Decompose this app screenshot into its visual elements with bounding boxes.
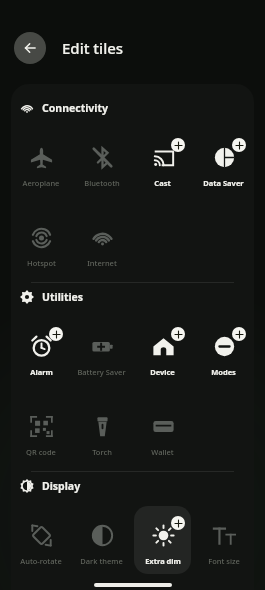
button[interactable]: Back [14,32,46,64]
button[interactable]: Hotspot [13,208,69,276]
staticText: Connectivity [42,101,109,115]
button[interactable]: Aeroplane mode [13,128,69,196]
staticText: Extra dim [145,556,181,566]
staticText: QR code scanner [13,447,69,457]
staticText: Display [42,479,81,493]
staticText: Auto-rotate [20,556,62,566]
button[interactable]: Font size [195,506,252,574]
staticText: Aeroplane mode [13,178,69,188]
staticText: Alarm [30,367,53,377]
staticText: Edit tiles [62,38,124,58]
button[interactable]: Cast [134,128,191,196]
button[interactable]: Torch [73,397,130,465]
button[interactable]: Wallet [134,397,191,465]
button[interactable]: Bluetooth [73,128,130,196]
button[interactable]: Data Saver [195,128,252,196]
button[interactable]: Battery Saver [73,317,130,385]
button[interactable]: Device controls [134,317,191,385]
staticText: Torch [92,447,112,457]
staticText: Wallet [151,447,174,457]
staticText: Internet [87,258,117,268]
staticText: Hotspot [27,258,56,268]
button[interactable]: Extra dim [134,506,191,574]
staticText: Utilities [42,290,84,304]
button[interactable]: Alarm [13,317,69,385]
staticText: Device controls [134,367,191,377]
staticText: Battery Saver [77,367,126,377]
staticText: Bluetooth [84,178,120,188]
staticText: Font size [208,556,240,566]
button[interactable]: Modes [195,317,252,385]
staticText: Cast [154,178,171,188]
staticText: Dark theme [80,556,123,566]
button[interactable]: Auto-rotate [13,506,69,574]
staticText: Modes [211,367,236,377]
button[interactable]: Dark theme [73,506,130,574]
staticText: Data Saver [203,178,244,188]
button[interactable]: QR code scanner [13,397,69,465]
button[interactable]: Internet [73,208,130,276]
